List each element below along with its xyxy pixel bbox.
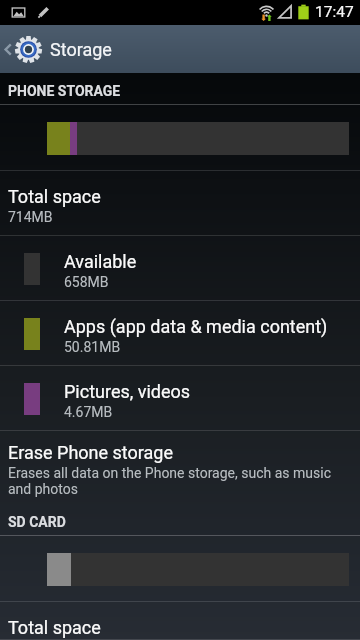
staticText: Total space: [8, 617, 101, 638]
staticText: 4.67MB: [64, 404, 113, 420]
staticText: PHONE STORAGE: [8, 83, 121, 99]
staticText: Erase Phone storage: [8, 442, 174, 463]
staticText: Pictures, videos: [64, 381, 191, 402]
staticText: Erases all data on the Phone storage, su…: [8, 465, 346, 497]
other: Edit: [36, 5, 51, 20]
button[interactable]: Navigate up, Storage settings: [0, 25, 50, 73]
staticText: 50.81MB: [64, 339, 121, 355]
staticText: 658MB: [64, 274, 109, 290]
staticText: SD CARD: [8, 514, 66, 530]
button[interactable]: Pictures, videos: [0, 366, 360, 431]
button[interactable]: Total space: [0, 602, 360, 640]
button[interactable]: Apps (app data & media content): [0, 301, 360, 366]
button[interactable]: Available: [0, 236, 360, 301]
staticText: Apps (app data & media content): [64, 316, 328, 337]
button[interactable]: Total space: [0, 171, 360, 236]
staticText: 17:47: [315, 3, 354, 21]
staticText: Storage: [50, 39, 112, 60]
staticText: Total space: [8, 186, 101, 207]
staticText: Available: [64, 251, 137, 272]
button[interactable]: Erase Phone storage: [0, 431, 360, 504]
other: Screenshot: [11, 5, 26, 20]
staticText: 714MB: [8, 209, 53, 225]
